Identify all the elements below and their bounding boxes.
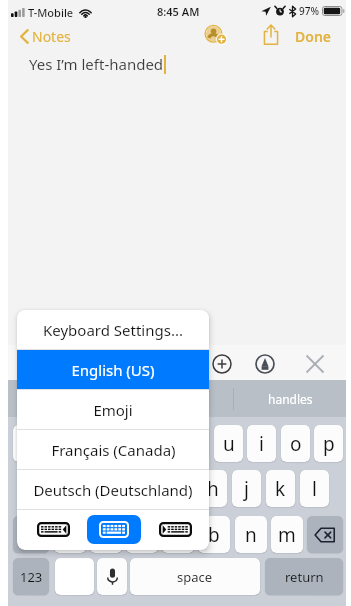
- button[interactable]: e: [80, 425, 109, 462]
- button[interactable]: b: [198, 516, 230, 553]
- button[interactable]: f: [131, 470, 160, 507]
- button[interactable]: Keyboard Settings...: [17, 310, 209, 349]
- button[interactable]: “handl”: [8, 391, 120, 407]
- staticText: i: [259, 431, 264, 457]
- staticText: English (US): [71, 360, 155, 380]
- staticText: x: [101, 522, 112, 548]
- button[interactable]: Shift: [13, 516, 49, 553]
- staticText: e: [89, 431, 100, 457]
- button[interactable]: Deutsch (Deutschland): [17, 470, 209, 509]
- staticText: return: [285, 568, 324, 586]
- button[interactable]: Done: [292, 24, 335, 49]
- button[interactable]: Camera: [127, 353, 149, 375]
- staticText: w: [53, 431, 68, 457]
- staticText: Français (Canada): [51, 440, 176, 460]
- button[interactable]: Checklist: [52, 353, 74, 375]
- staticText: f: [142, 476, 149, 502]
- button[interactable]: Add attachment: [211, 353, 233, 375]
- button[interactable]: y: [180, 425, 209, 462]
- button[interactable]: j: [232, 470, 261, 507]
- button[interactable]: s: [63, 470, 92, 507]
- button[interactable]: u: [214, 425, 243, 462]
- staticText: Deutsch (Deutschland): [33, 480, 193, 500]
- staticText: k: [275, 476, 286, 502]
- button[interactable]: v: [162, 516, 194, 553]
- button[interactable]: z: [54, 516, 86, 553]
- staticText: v: [173, 522, 183, 548]
- staticText: s: [73, 476, 83, 502]
- staticText: a: [39, 476, 50, 502]
- button[interactable]: h: [198, 470, 227, 507]
- button[interactable]: d: [97, 470, 126, 507]
- button[interactable]: return: [265, 558, 343, 595]
- staticText: t: [158, 431, 165, 457]
- staticText: b: [208, 522, 220, 548]
- button[interactable]: Switch keyboard: [55, 558, 94, 595]
- staticText: space: [177, 568, 213, 586]
- button[interactable]: m: [271, 516, 303, 553]
- button[interactable]: Notes: [16, 24, 75, 49]
- staticText: d: [106, 476, 118, 502]
- staticText: 123: [20, 568, 43, 586]
- button[interactable]: n: [235, 516, 267, 553]
- button[interactable]: Emoji: [17, 390, 209, 429]
- staticText: z: [66, 522, 75, 548]
- button[interactable]: Full keyboard: [87, 515, 141, 544]
- staticText: n: [245, 522, 257, 548]
- button[interactable]: c: [126, 516, 158, 553]
- staticText: r: [124, 431, 132, 457]
- staticText: h: [207, 476, 219, 502]
- staticText: 97%: [299, 4, 319, 18]
- staticText: T-Mobile: [28, 5, 74, 20]
- button[interactable]: o: [281, 425, 310, 462]
- button[interactable]: handle: [121, 391, 233, 407]
- button[interactable]: Backspace: [307, 516, 343, 553]
- button[interactable]: Close keyboard: [304, 353, 326, 375]
- button[interactable]: Français (Canada): [17, 430, 209, 469]
- staticText: Yes I’m left-handed: [29, 54, 164, 74]
- staticText: o: [290, 431, 302, 457]
- button[interactable]: x: [90, 516, 122, 553]
- button[interactable]: English (US): [17, 350, 209, 389]
- button[interactable]: l: [300, 470, 329, 507]
- button[interactable]: Add people: [204, 25, 237, 49]
- button[interactable]: 123: [13, 558, 49, 595]
- button[interactable]: Markup: [254, 353, 276, 375]
- staticText: g: [174, 476, 186, 502]
- staticText: c: [137, 522, 147, 548]
- button[interactable]: space: [130, 558, 260, 595]
- staticText: 8:45 AM: [157, 4, 200, 19]
- button[interactable]: t: [147, 425, 176, 462]
- staticText: handles: [268, 391, 313, 407]
- button[interactable]: k: [266, 470, 295, 507]
- staticText: l: [312, 476, 317, 502]
- staticText: Emoji: [93, 400, 133, 420]
- staticText: Notes: [32, 27, 71, 46]
- button[interactable]: handles: [234, 391, 346, 407]
- staticText: p: [323, 431, 335, 457]
- button[interactable]: Share: [259, 22, 283, 46]
- staticText: Keyboard Settings...: [43, 320, 183, 340]
- button[interactable]: a: [30, 470, 59, 507]
- button[interactable]: Split keyboard right: [158, 515, 192, 544]
- button[interactable]: q: [13, 425, 42, 462]
- button[interactable]: Dictate: [97, 558, 127, 595]
- staticText: u: [223, 431, 235, 457]
- button[interactable]: Split keyboard left: [36, 515, 70, 544]
- staticText: j: [244, 476, 249, 502]
- button[interactable]: w: [46, 425, 75, 462]
- button[interactable]: p: [314, 425, 343, 462]
- button[interactable]: g: [165, 470, 194, 507]
- staticText: m: [278, 522, 296, 548]
- button[interactable]: r: [113, 425, 142, 462]
- button[interactable]: i: [247, 425, 276, 462]
- staticText: Done: [295, 27, 332, 46]
